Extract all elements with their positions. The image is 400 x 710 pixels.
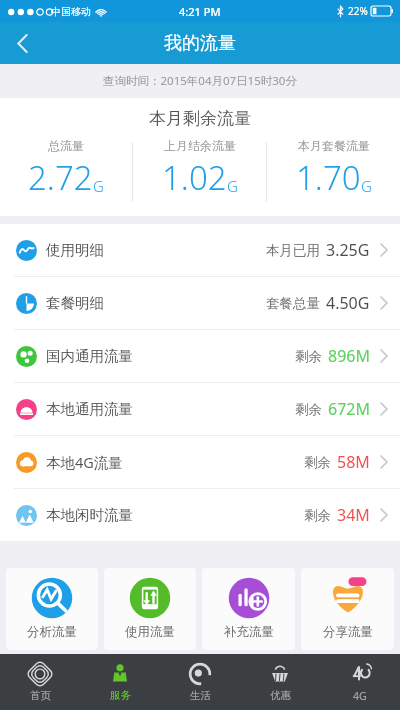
staticText: 服务 (110, 689, 131, 702)
staticText: 本地通用流量 (46, 400, 133, 418)
staticText: G (361, 176, 372, 196)
button[interactable]: 国内通用流量 (0, 330, 400, 382)
staticText: 国内通用流量 (46, 347, 133, 365)
staticText: 分享流量 (323, 624, 373, 640)
button[interactable]: 补充流量 (202, 568, 295, 650)
staticText: 896M (328, 345, 370, 367)
staticText: 本地闲时流量 (46, 506, 133, 524)
button[interactable]: 生活 (160, 654, 240, 710)
button[interactable]: 服务 (80, 654, 160, 710)
staticText: 本月套餐流量 (298, 138, 370, 153)
button[interactable]: 分享流量 (301, 568, 394, 650)
button[interactable]: 本地闲时流量 (0, 489, 400, 541)
staticText: 4:21 PM (179, 4, 221, 19)
staticText: 优惠 (270, 689, 291, 702)
button[interactable]: 使用流量 (104, 568, 196, 650)
button[interactable]: Back (0, 22, 44, 64)
staticText: 首页 (30, 689, 51, 702)
staticText: 查询时间：2015年04月07日15时30分 (103, 73, 297, 89)
staticText: 剩余 (304, 454, 331, 471)
staticText: 分析流量 (27, 624, 77, 640)
staticText: 剩余 (295, 348, 322, 365)
staticText: 总流量 (48, 138, 84, 153)
staticText: 4G (353, 689, 367, 703)
staticText: 3.25G (326, 239, 370, 261)
button[interactable]: 4G (320, 654, 400, 710)
staticText: 22% (348, 4, 368, 18)
staticText: 剩余 (295, 401, 322, 418)
button[interactable]: 本地4G流量 (0, 436, 400, 488)
staticText: 34M (337, 504, 370, 526)
staticText: 套餐总量 (266, 295, 320, 312)
staticText: 中国移动 (51, 5, 91, 18)
staticText: G (93, 176, 104, 196)
staticText: 补充流量 (224, 624, 274, 640)
staticText: 我的流量 (164, 32, 236, 55)
button[interactable]: 本地通用流量 (0, 383, 400, 435)
staticText: 使用明细 (46, 241, 104, 259)
staticText: 本月已用 (266, 242, 320, 259)
staticText: 本月剩余流量 (149, 108, 251, 129)
staticText: 上月结余流量 (164, 138, 236, 153)
staticText: 1.70 (296, 155, 361, 200)
staticText: 672M (328, 398, 370, 420)
staticText: 58M (337, 451, 370, 473)
staticText: 套餐明细 (46, 294, 104, 312)
staticText: 剩余 (304, 507, 331, 524)
staticText: 4.50G (326, 292, 370, 314)
staticText: 2.72 (28, 155, 93, 200)
button[interactable]: 分析流量 (6, 568, 98, 650)
staticText: 生活 (190, 689, 211, 702)
button[interactable]: 套餐明细 (0, 277, 400, 329)
staticText: 本地4G流量 (46, 452, 123, 472)
staticText: G (227, 176, 238, 196)
button[interactable]: 使用明细 (0, 224, 400, 276)
staticText: 使用流量 (125, 624, 175, 640)
button[interactable]: 首页 (0, 654, 80, 710)
staticText: 1.02 (162, 155, 227, 200)
button[interactable]: 优惠 (240, 654, 320, 710)
